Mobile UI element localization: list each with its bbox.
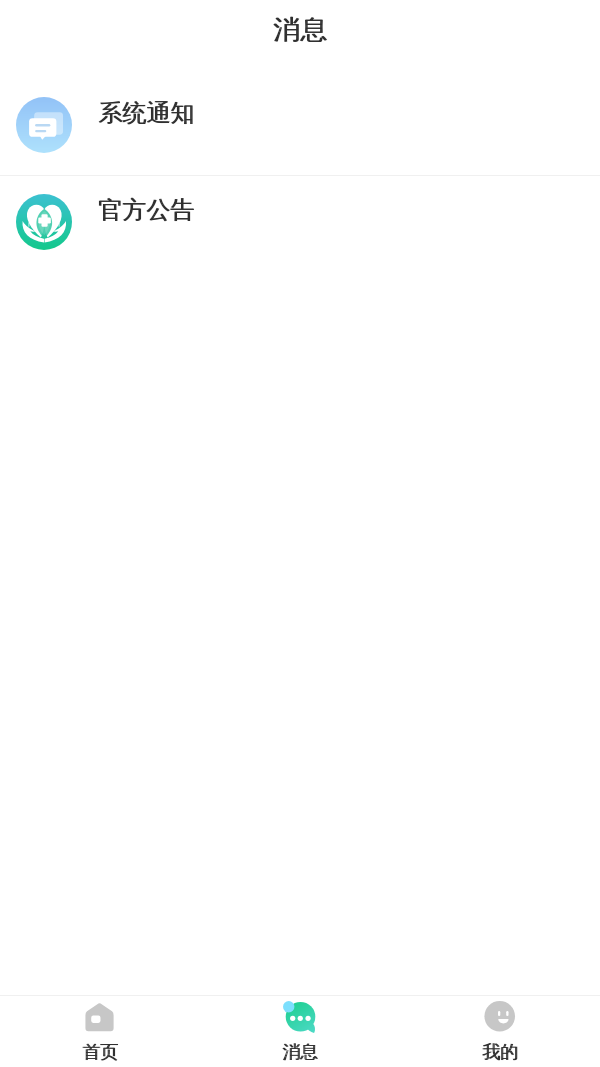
staticText: 官方公告 xyxy=(99,195,195,225)
staticText: 官方公告 xyxy=(98,195,194,225)
button[interactable]: 官方公告 xyxy=(0,176,600,268)
other: Profile xyxy=(484,1001,516,1033)
staticText: 消息 xyxy=(283,1041,319,1064)
staticText: 我的 xyxy=(482,1041,518,1064)
staticText: 消息 xyxy=(273,13,327,47)
other: Messages xyxy=(284,1001,316,1033)
button[interactable]: 系统通知 xyxy=(0,74,600,175)
staticText: 系统通知 xyxy=(99,98,195,128)
staticText: 首页 xyxy=(82,1041,118,1064)
button[interactable]: Home xyxy=(0,996,200,1067)
staticText: 消息 xyxy=(274,13,328,47)
staticText: 系统通知 xyxy=(98,98,194,128)
button[interactable]: Profile xyxy=(400,996,600,1067)
other: Home xyxy=(84,1001,116,1033)
button[interactable]: Messages xyxy=(200,996,400,1067)
staticText: 我的 xyxy=(483,1041,519,1064)
staticText: 首页 xyxy=(83,1041,119,1064)
staticText: 消息 xyxy=(282,1041,318,1064)
